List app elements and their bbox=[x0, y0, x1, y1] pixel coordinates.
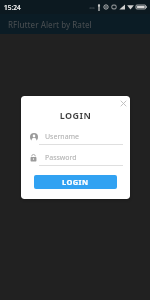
staticText: Password bbox=[45, 153, 77, 163]
staticText: Username bbox=[45, 132, 80, 142]
staticText: RFlutter Alert by Ratel bbox=[8, 19, 92, 30]
button[interactable]: Close bbox=[116, 96, 130, 110]
staticText: 15:24 bbox=[4, 3, 21, 12]
staticText: LOGIN bbox=[21, 109, 130, 121]
button[interactable]: LOGIN bbox=[34, 175, 117, 189]
staticText: LOGIN bbox=[62, 177, 89, 187]
